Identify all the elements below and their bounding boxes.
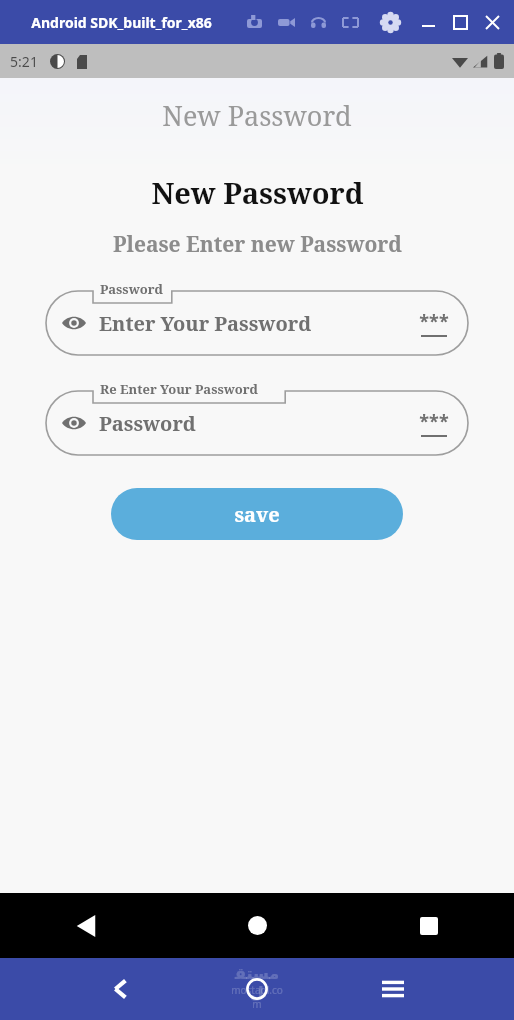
button[interactable]: Audio xyxy=(302,6,334,38)
staticText: *** xyxy=(419,409,449,434)
button[interactable]: Back xyxy=(94,962,148,1016)
staticText: 5:21 xyxy=(10,52,38,71)
button[interactable]: Screenshot xyxy=(238,6,270,38)
staticText: Android SDK_built_for_x86 xyxy=(31,13,212,32)
staticText: Enter Your Password xyxy=(99,310,419,337)
button[interactable]: Menu xyxy=(366,962,420,1016)
button[interactable]: Fullscreen xyxy=(334,6,366,38)
staticText: Please Enter new Password xyxy=(113,230,402,259)
button[interactable]: Toggle password visibility xyxy=(61,410,87,436)
button[interactable]: Recents xyxy=(343,893,514,958)
button[interactable]: Maximize xyxy=(444,6,476,38)
button[interactable]: Record xyxy=(270,6,302,38)
button[interactable]: Back xyxy=(0,893,172,958)
button[interactable]: Password xyxy=(45,282,469,355)
staticText: *** xyxy=(419,309,449,334)
staticText: Password xyxy=(100,280,163,298)
staticText: Re Enter Your Password xyxy=(100,380,258,398)
button[interactable]: Toggle password visibility xyxy=(61,310,87,336)
button[interactable]: Home xyxy=(230,962,284,1016)
button[interactable]: Close xyxy=(476,6,508,38)
button[interactable]: Home xyxy=(172,893,343,958)
button[interactable]: Settings xyxy=(374,6,406,38)
staticText: New Password xyxy=(151,173,364,212)
staticText: Password xyxy=(99,410,419,437)
staticText: save xyxy=(234,501,280,528)
staticText: مستقل xyxy=(230,964,284,1002)
staticText: New Password xyxy=(162,97,352,134)
staticText: mostaql.com xyxy=(230,983,284,1011)
button[interactable]: Re Enter Your Password xyxy=(45,382,469,455)
button[interactable]: save xyxy=(111,488,403,540)
button[interactable]: Minimize xyxy=(412,6,444,38)
